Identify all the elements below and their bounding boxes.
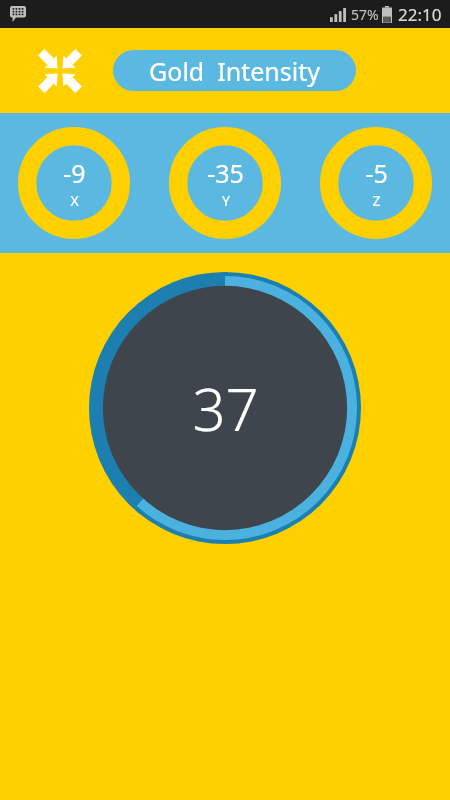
button[interactable]: -35	[169, 127, 281, 239]
staticText: -35	[207, 156, 244, 190]
staticText: X	[70, 191, 79, 210]
staticText: 22:10	[398, 3, 442, 26]
staticText: -5	[365, 156, 388, 190]
button[interactable]: -9	[18, 127, 130, 239]
button[interactable]: Collapse	[30, 41, 90, 101]
button[interactable]: 37	[89, 272, 361, 544]
button[interactable]: -5	[320, 127, 432, 239]
button[interactable]: Gold Intensity	[113, 50, 356, 91]
staticText: 37	[192, 369, 259, 448]
staticText: Gold Intensity	[149, 54, 320, 88]
staticText: Y	[222, 191, 230, 210]
staticText: 57%	[351, 5, 379, 24]
staticText: Z	[372, 191, 381, 210]
staticText: -9	[63, 156, 86, 190]
